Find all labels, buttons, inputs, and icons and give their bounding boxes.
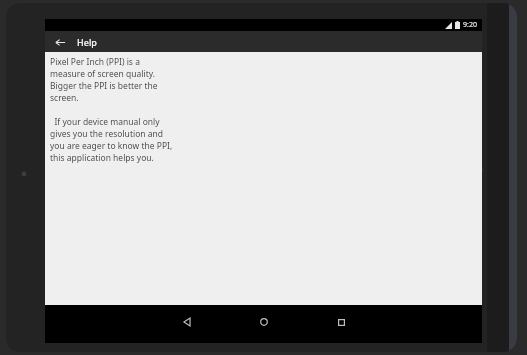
button[interactable]: Navigate up bbox=[50, 32, 70, 52]
staticText: Pixel Per Inch (PPI) is a measure of scr… bbox=[50, 56, 174, 104]
staticText: If your device manual only gives you the… bbox=[50, 116, 178, 164]
button[interactable]: Home bbox=[242, 312, 286, 332]
staticText: Help bbox=[77, 36, 97, 48]
button[interactable]: Back bbox=[165, 312, 209, 332]
staticText: 9:20 bbox=[463, 20, 477, 30]
button[interactable]: Recent apps bbox=[319, 312, 363, 332]
